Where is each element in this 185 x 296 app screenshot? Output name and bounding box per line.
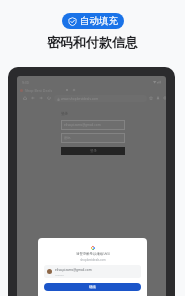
button[interactable]: Home — [23, 96, 27, 100]
staticText: 登录 — [90, 149, 97, 153]
button[interactable]: Close tab — [65, 88, 69, 92]
staticText: 密码和付款信息 — [47, 34, 138, 50]
staticText: elisa.pizarro@gmail.com — [64, 123, 101, 127]
button[interactable]: www.shopbestdeals.com — [54, 95, 147, 102]
button[interactable]: Shop Best Deals — [19, 85, 54, 95]
button[interactable]: New tab — [72, 88, 76, 92]
button[interactable]: Reload — [47, 96, 51, 100]
staticText: 9:30 — [22, 80, 29, 85]
button[interactable]: Forward — [39, 96, 43, 100]
staticText: 继续 — [89, 285, 96, 289]
staticText: www.shopbestdeals.com — [61, 97, 99, 101]
button[interactable]: Extensions — [163, 96, 166, 100]
staticText: 自动填充 — [80, 15, 118, 27]
button[interactable]: Account — [156, 96, 160, 100]
button[interactable]: 登录 — [61, 147, 125, 155]
button[interactable]: elisa.pizarro@gmail.com — [44, 265, 141, 278]
button[interactable]: 继续 — [44, 283, 141, 291]
staticText: 请登录帐号以继续访问 — [76, 252, 110, 256]
staticText: •••••••••• — [55, 273, 64, 276]
button[interactable]: Back — [31, 96, 35, 100]
staticText: shopbestdeals.com — [80, 258, 106, 262]
staticText: 密码 — [64, 136, 71, 140]
button[interactable]: 自动填充 — [62, 13, 124, 29]
staticText: 登录 — [61, 112, 68, 116]
staticText: elisa.pizarro@gmail.com — [55, 268, 92, 272]
staticText: Shop Best Deals — [25, 88, 53, 93]
button[interactable]: Bookmark — [149, 96, 153, 100]
